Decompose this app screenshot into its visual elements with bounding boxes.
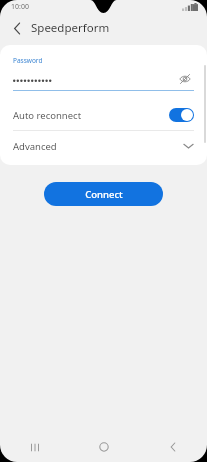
staticText: Speedperform (31, 20, 110, 36)
button[interactable]: Connect (44, 182, 163, 206)
button[interactable]: Auto reconnect (0, 100, 207, 130)
button[interactable]: Recents (0, 432, 69, 462)
button[interactable]: Auto reconnect (169, 108, 194, 122)
button[interactable]: Show password (176, 70, 194, 88)
button[interactable]: Advanced (0, 131, 207, 161)
staticText: Advanced (13, 140, 183, 153)
staticText: Password (13, 56, 43, 65)
staticText: Auto reconnect (13, 109, 169, 122)
staticText: Connect (85, 188, 123, 201)
staticText: 10:00 (11, 2, 29, 12)
button[interactable]: Password (0, 45, 207, 91)
button[interactable]: Back (138, 432, 207, 462)
button[interactable]: Back (6, 17, 28, 39)
button[interactable]: Home (69, 432, 138, 462)
